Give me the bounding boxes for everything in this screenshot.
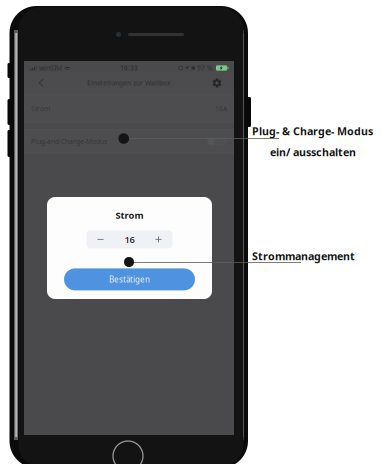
staticText: Einstellungen zur Wallbox — [87, 79, 171, 87]
staticText: Strommanagement — [252, 249, 355, 263]
staticText: 16A — [215, 104, 227, 113]
staticText: Strom — [31, 104, 50, 113]
button[interactable]: Settings — [206, 72, 228, 94]
staticText: 16:33 — [120, 64, 138, 72]
button[interactable]: Bestätigen — [64, 268, 195, 290]
button[interactable]: Decrease — [86, 230, 114, 248]
staticText: ein/ ausschalten — [270, 145, 356, 159]
staticText: Bestätigen — [109, 274, 150, 285]
staticText: 16 — [124, 233, 134, 246]
staticText: Plug-and-Charge-Modus — [31, 137, 107, 146]
button[interactable]: Increase — [144, 230, 172, 248]
staticText: Strom — [115, 209, 143, 221]
staticText: 97 % — [197, 64, 213, 72]
staticText: winSIM — [39, 64, 62, 72]
button[interactable]: Plug-and-Charge-Modus — [24, 130, 234, 153]
staticText: Plug- & Charge- Modus — [252, 124, 373, 138]
